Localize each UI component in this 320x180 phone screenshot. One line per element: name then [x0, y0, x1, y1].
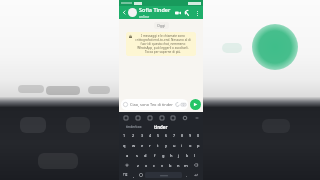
button[interactable]: r [146, 141, 154, 149]
button[interactable]: ?12 [120, 172, 130, 178]
button[interactable]: Keyboard tool 5 [181, 114, 188, 121]
button[interactable]: More options [193, 9, 201, 17]
staticText: 9 [189, 133, 192, 138]
button[interactable]: 4 [146, 132, 154, 139]
button[interactable]: Keyboard tool 1 [134, 114, 141, 121]
staticText: e [141, 143, 144, 148]
staticText: g [162, 153, 165, 158]
button[interactable]: 1 [120, 132, 129, 139]
staticText: x [145, 163, 148, 168]
button[interactable]: a [123, 151, 132, 159]
staticText: 5 [157, 133, 160, 138]
button[interactable]: u [170, 141, 178, 149]
button[interactable]: Backspace [190, 161, 202, 169]
button[interactable]: w [129, 141, 138, 149]
staticText: v [161, 163, 164, 168]
staticText: f [154, 153, 156, 158]
button[interactable]: Ciao, sono Teo di tinder [121, 99, 188, 110]
staticText: o [189, 143, 192, 148]
staticText: Sofia Tinder [139, 6, 171, 13]
button[interactable]: s [132, 151, 141, 159]
button[interactable]: Call [183, 8, 193, 18]
button[interactable]: e [138, 141, 146, 149]
button[interactable]: v [158, 161, 166, 169]
button[interactable]: Send [190, 99, 201, 110]
staticText: m [184, 163, 188, 168]
button[interactable]: t [154, 141, 162, 149]
button[interactable]: 3 [138, 132, 146, 139]
staticText: 1 [123, 133, 126, 138]
button[interactable]: x [142, 161, 150, 169]
staticText: 4 [149, 133, 152, 138]
button[interactable]: h [167, 151, 175, 159]
button[interactable]: q [120, 141, 129, 149]
staticText: online [139, 14, 150, 19]
button[interactable]: Keyboard tool 4 [169, 114, 176, 121]
button[interactable]: o [186, 141, 194, 149]
staticText: y [165, 143, 168, 148]
staticText: h [170, 153, 173, 158]
staticText: s [136, 153, 138, 158]
button[interactable]: 8 [178, 132, 186, 139]
button[interactable]: I messaggi e le chiamate sono crittograf… [129, 34, 193, 54]
button[interactable]: b [166, 161, 174, 169]
staticText: ?12 [123, 173, 128, 177]
button[interactable]: Keyboard tool 3 [158, 114, 165, 121]
button[interactable]: Back [121, 9, 128, 16]
button[interactable]: Emoji [137, 172, 145, 178]
staticText: 6 [165, 133, 168, 138]
button[interactable]: g [159, 151, 167, 159]
button[interactable]: Contact photo [128, 8, 137, 17]
button[interactable]: y [162, 141, 170, 149]
button[interactable]: k [183, 151, 191, 159]
button[interactable]: 7 [170, 132, 178, 139]
button[interactable]: f [150, 151, 159, 159]
staticText: l [194, 153, 196, 158]
button[interactable]: Keyboard tool 6 [193, 114, 200, 121]
button[interactable]: . [182, 172, 190, 178]
staticText: b [169, 163, 172, 168]
staticText: r [149, 143, 151, 148]
button[interactable]: 6 [162, 132, 170, 139]
staticText: 8 [181, 133, 184, 138]
button[interactable]: Keyboard tool 0 [122, 114, 129, 121]
staticText: n [177, 163, 180, 168]
button[interactable]: Video call [173, 8, 183, 18]
button[interactable]: n [174, 161, 182, 169]
staticText: 2 [132, 133, 135, 138]
button[interactable]: c [150, 161, 158, 169]
button[interactable]: Enter [190, 172, 202, 178]
button[interactable]: 2 [129, 132, 138, 139]
button[interactable]: 9 [186, 132, 194, 139]
staticText: p [197, 143, 200, 148]
staticText: . [186, 173, 187, 178]
staticText: q [123, 143, 126, 148]
button[interactable]: z [133, 161, 142, 169]
button[interactable]: Keyboard tool 2 [146, 114, 153, 121]
button[interactable]: m [182, 161, 190, 169]
staticText: I messaggi e le chiamate sono crittograf… [133, 34, 193, 54]
staticText: 3 [141, 133, 144, 138]
staticText: , [133, 173, 134, 178]
button[interactable]: d [141, 151, 150, 159]
button[interactable]: tinderbox [122, 124, 146, 129]
staticText: c [153, 163, 155, 168]
button[interactable]: i [178, 141, 186, 149]
staticText: 0 [197, 133, 200, 138]
staticText: 7 [173, 133, 176, 138]
staticText: tinder [154, 124, 168, 130]
staticText: u [173, 143, 176, 148]
button[interactable]: l [191, 151, 199, 159]
staticText: i [181, 143, 183, 148]
button[interactable]: Shift [120, 161, 133, 169]
button[interactable]: p [194, 141, 202, 149]
button[interactable]: j [175, 151, 183, 159]
staticText: t [157, 143, 159, 148]
button[interactable]: , [130, 172, 137, 178]
button[interactable]: Space [145, 172, 182, 178]
button[interactable]: Sofia Tinder [139, 6, 173, 19]
staticText: a [126, 153, 129, 158]
button[interactable]: 0 [194, 132, 202, 139]
button[interactable]: 5 [154, 132, 162, 139]
button[interactable]: tinder [146, 124, 176, 130]
